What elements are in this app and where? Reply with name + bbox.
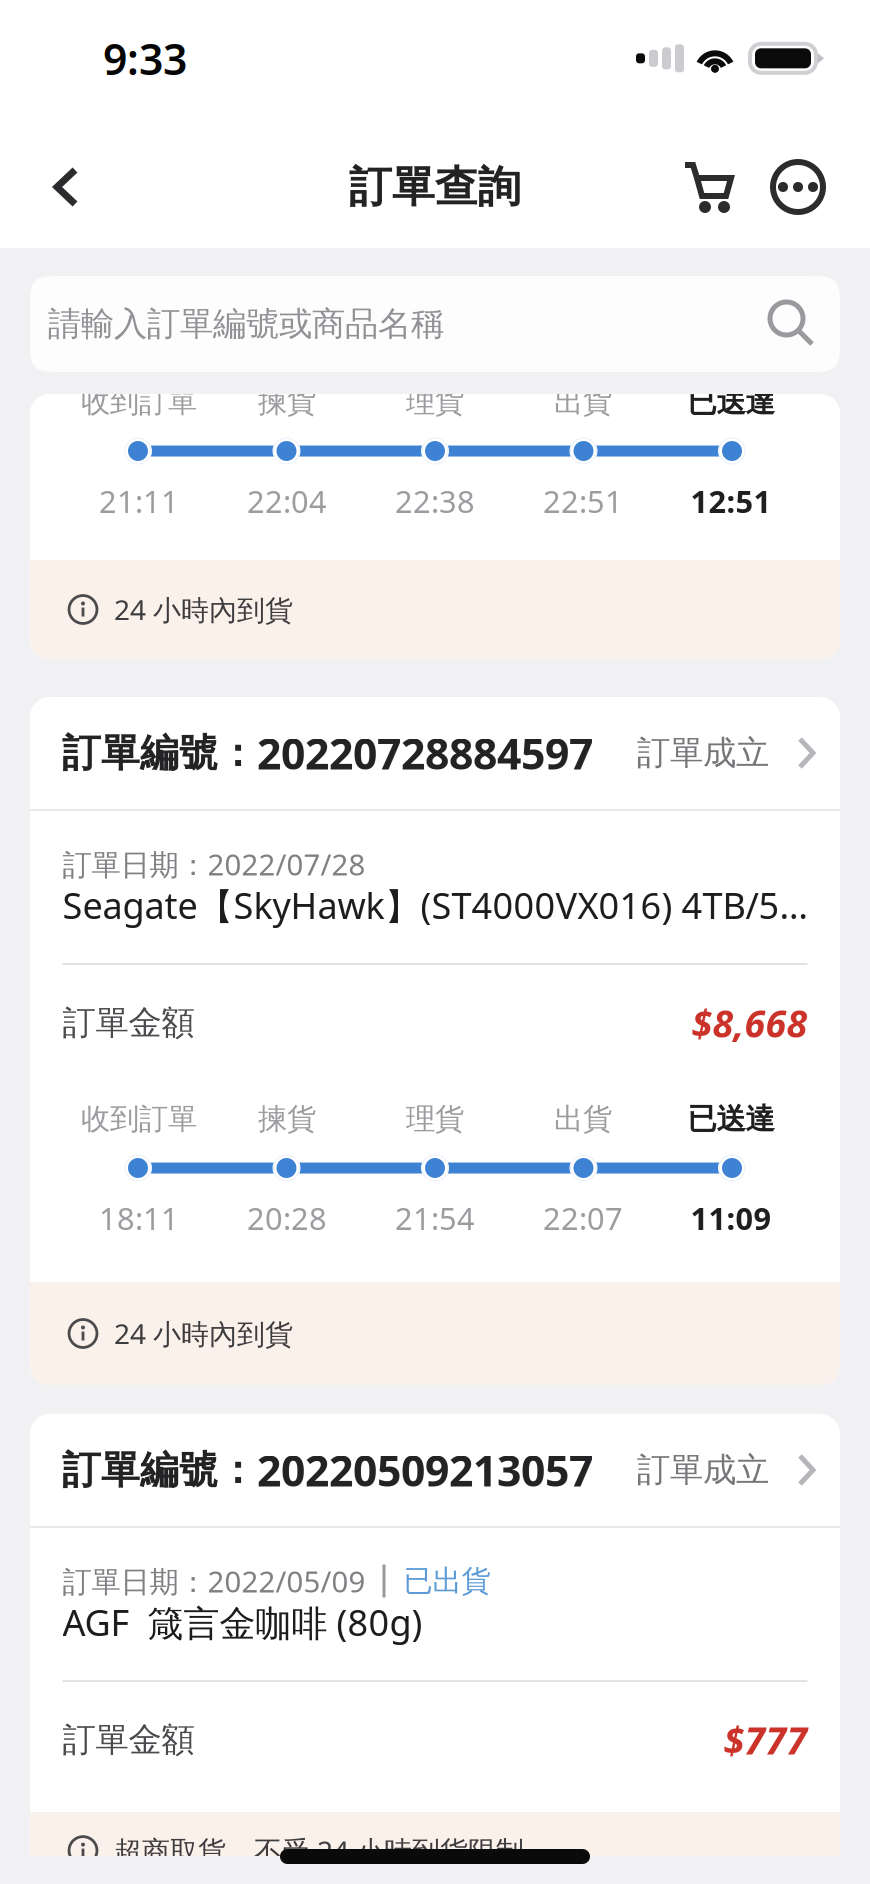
staticText: 理貨 <box>406 384 464 420</box>
staticText: 揀貨 <box>258 384 316 420</box>
staticText: 訂單編號： <box>62 729 257 777</box>
button[interactable]: 訂單編號： <box>30 697 840 809</box>
staticText: 24 小時內到貨 <box>114 1315 293 1352</box>
staticText: 出貨 <box>554 384 612 420</box>
staticText: 11:09 <box>690 1198 771 1238</box>
staticText: 22:51 <box>543 481 623 521</box>
staticText: 已送達 <box>687 384 774 420</box>
staticText: 20220509213057 <box>257 1442 593 1498</box>
staticText: 請輸入訂單編號或商品名稱 <box>48 303 444 344</box>
staticText: 20220728884597 <box>257 725 593 781</box>
staticText: 20:28 <box>247 1198 327 1238</box>
staticText: 出貨 <box>554 1101 612 1137</box>
staticText: 揀貨 <box>258 1101 316 1137</box>
staticText: 22:07 <box>543 1198 623 1238</box>
staticText: 訂單日期：2022/07/28 <box>62 844 365 883</box>
staticText: 21:11 <box>99 481 179 521</box>
staticText: 24 小時內到貨 <box>114 591 293 628</box>
button[interactable]: Cart <box>678 81 738 263</box>
staticText: 訂單金額 <box>62 1002 194 1043</box>
staticText: 22:04 <box>247 481 327 521</box>
staticText: 12:51 <box>690 481 771 521</box>
staticText: 已出貨 <box>403 1563 490 1599</box>
staticText: 訂單金額 <box>62 1719 194 1760</box>
staticText: 訂單日期：2022/05/09 <box>62 1561 365 1600</box>
staticText: 訂單查詢 <box>349 161 521 213</box>
button[interactable]: Back <box>0 81 100 263</box>
staticText: 訂單編號： <box>62 1446 257 1494</box>
staticText: 已送達 <box>687 1101 774 1137</box>
staticText: 訂單成立 <box>637 1449 769 1490</box>
staticText: $8,668 <box>691 998 807 1048</box>
staticText: $777 <box>723 1715 807 1765</box>
button[interactable]: 請輸入訂單編號或商品名稱 <box>30 276 840 372</box>
staticText: 9:33 <box>103 30 187 87</box>
staticText: 收到訂單 <box>81 1101 197 1137</box>
staticText: 21:54 <box>395 1198 475 1238</box>
button[interactable]: More <box>770 81 870 263</box>
staticText: 超商取貨，不受 24 小時到貨限制 <box>114 1832 524 1869</box>
staticText: Seagate【SkyHawk】(ST4000VX016) 4TB/5… <box>62 881 807 929</box>
staticText: 收到訂單 <box>81 384 197 420</box>
staticText: 18:11 <box>99 1198 179 1238</box>
staticText: 22:38 <box>395 481 475 521</box>
staticText: 訂單成立 <box>637 732 769 773</box>
button[interactable]: 訂單編號： <box>30 1414 840 1526</box>
staticText: AGF 箴言金咖啡 (80g) <box>62 1598 422 1646</box>
staticText: 理貨 <box>406 1101 464 1137</box>
